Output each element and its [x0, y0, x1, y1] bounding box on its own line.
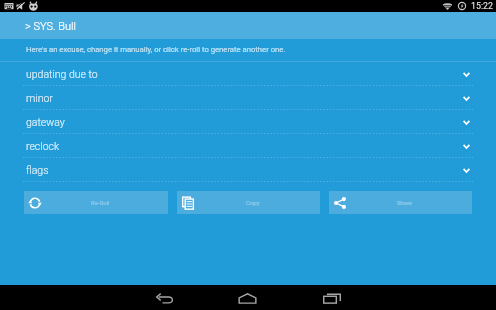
- button[interactable]: updating due to: [0, 62, 496, 86]
- staticText: flags: [26, 164, 49, 176]
- staticText: 15:22: [471, 1, 493, 11]
- staticText: updating due to: [26, 68, 98, 80]
- button[interactable]: Share: [329, 191, 472, 214]
- button[interactable]: Recent apps: [314, 285, 349, 310]
- button[interactable]: minor: [0, 86, 496, 110]
- button[interactable]: Back: [147, 285, 182, 310]
- button[interactable]: reclock: [0, 134, 496, 158]
- staticText: Re-Roll: [91, 199, 110, 206]
- staticText: reclock: [26, 140, 60, 152]
- staticText: > SYS. Bull: [25, 20, 76, 33]
- staticText: Copy: [246, 199, 260, 206]
- button[interactable]: flags: [0, 158, 496, 182]
- staticText: gateway: [26, 116, 65, 128]
- button[interactable]: Copy: [177, 191, 320, 214]
- button[interactable]: gateway: [0, 110, 496, 134]
- button[interactable]: Home: [230, 285, 265, 310]
- button[interactable]: Re-Roll: [24, 191, 168, 214]
- staticText: Here's an excuse, change it manually, or…: [26, 45, 286, 54]
- staticText: Share: [397, 199, 413, 206]
- staticText: minor: [26, 92, 53, 104]
